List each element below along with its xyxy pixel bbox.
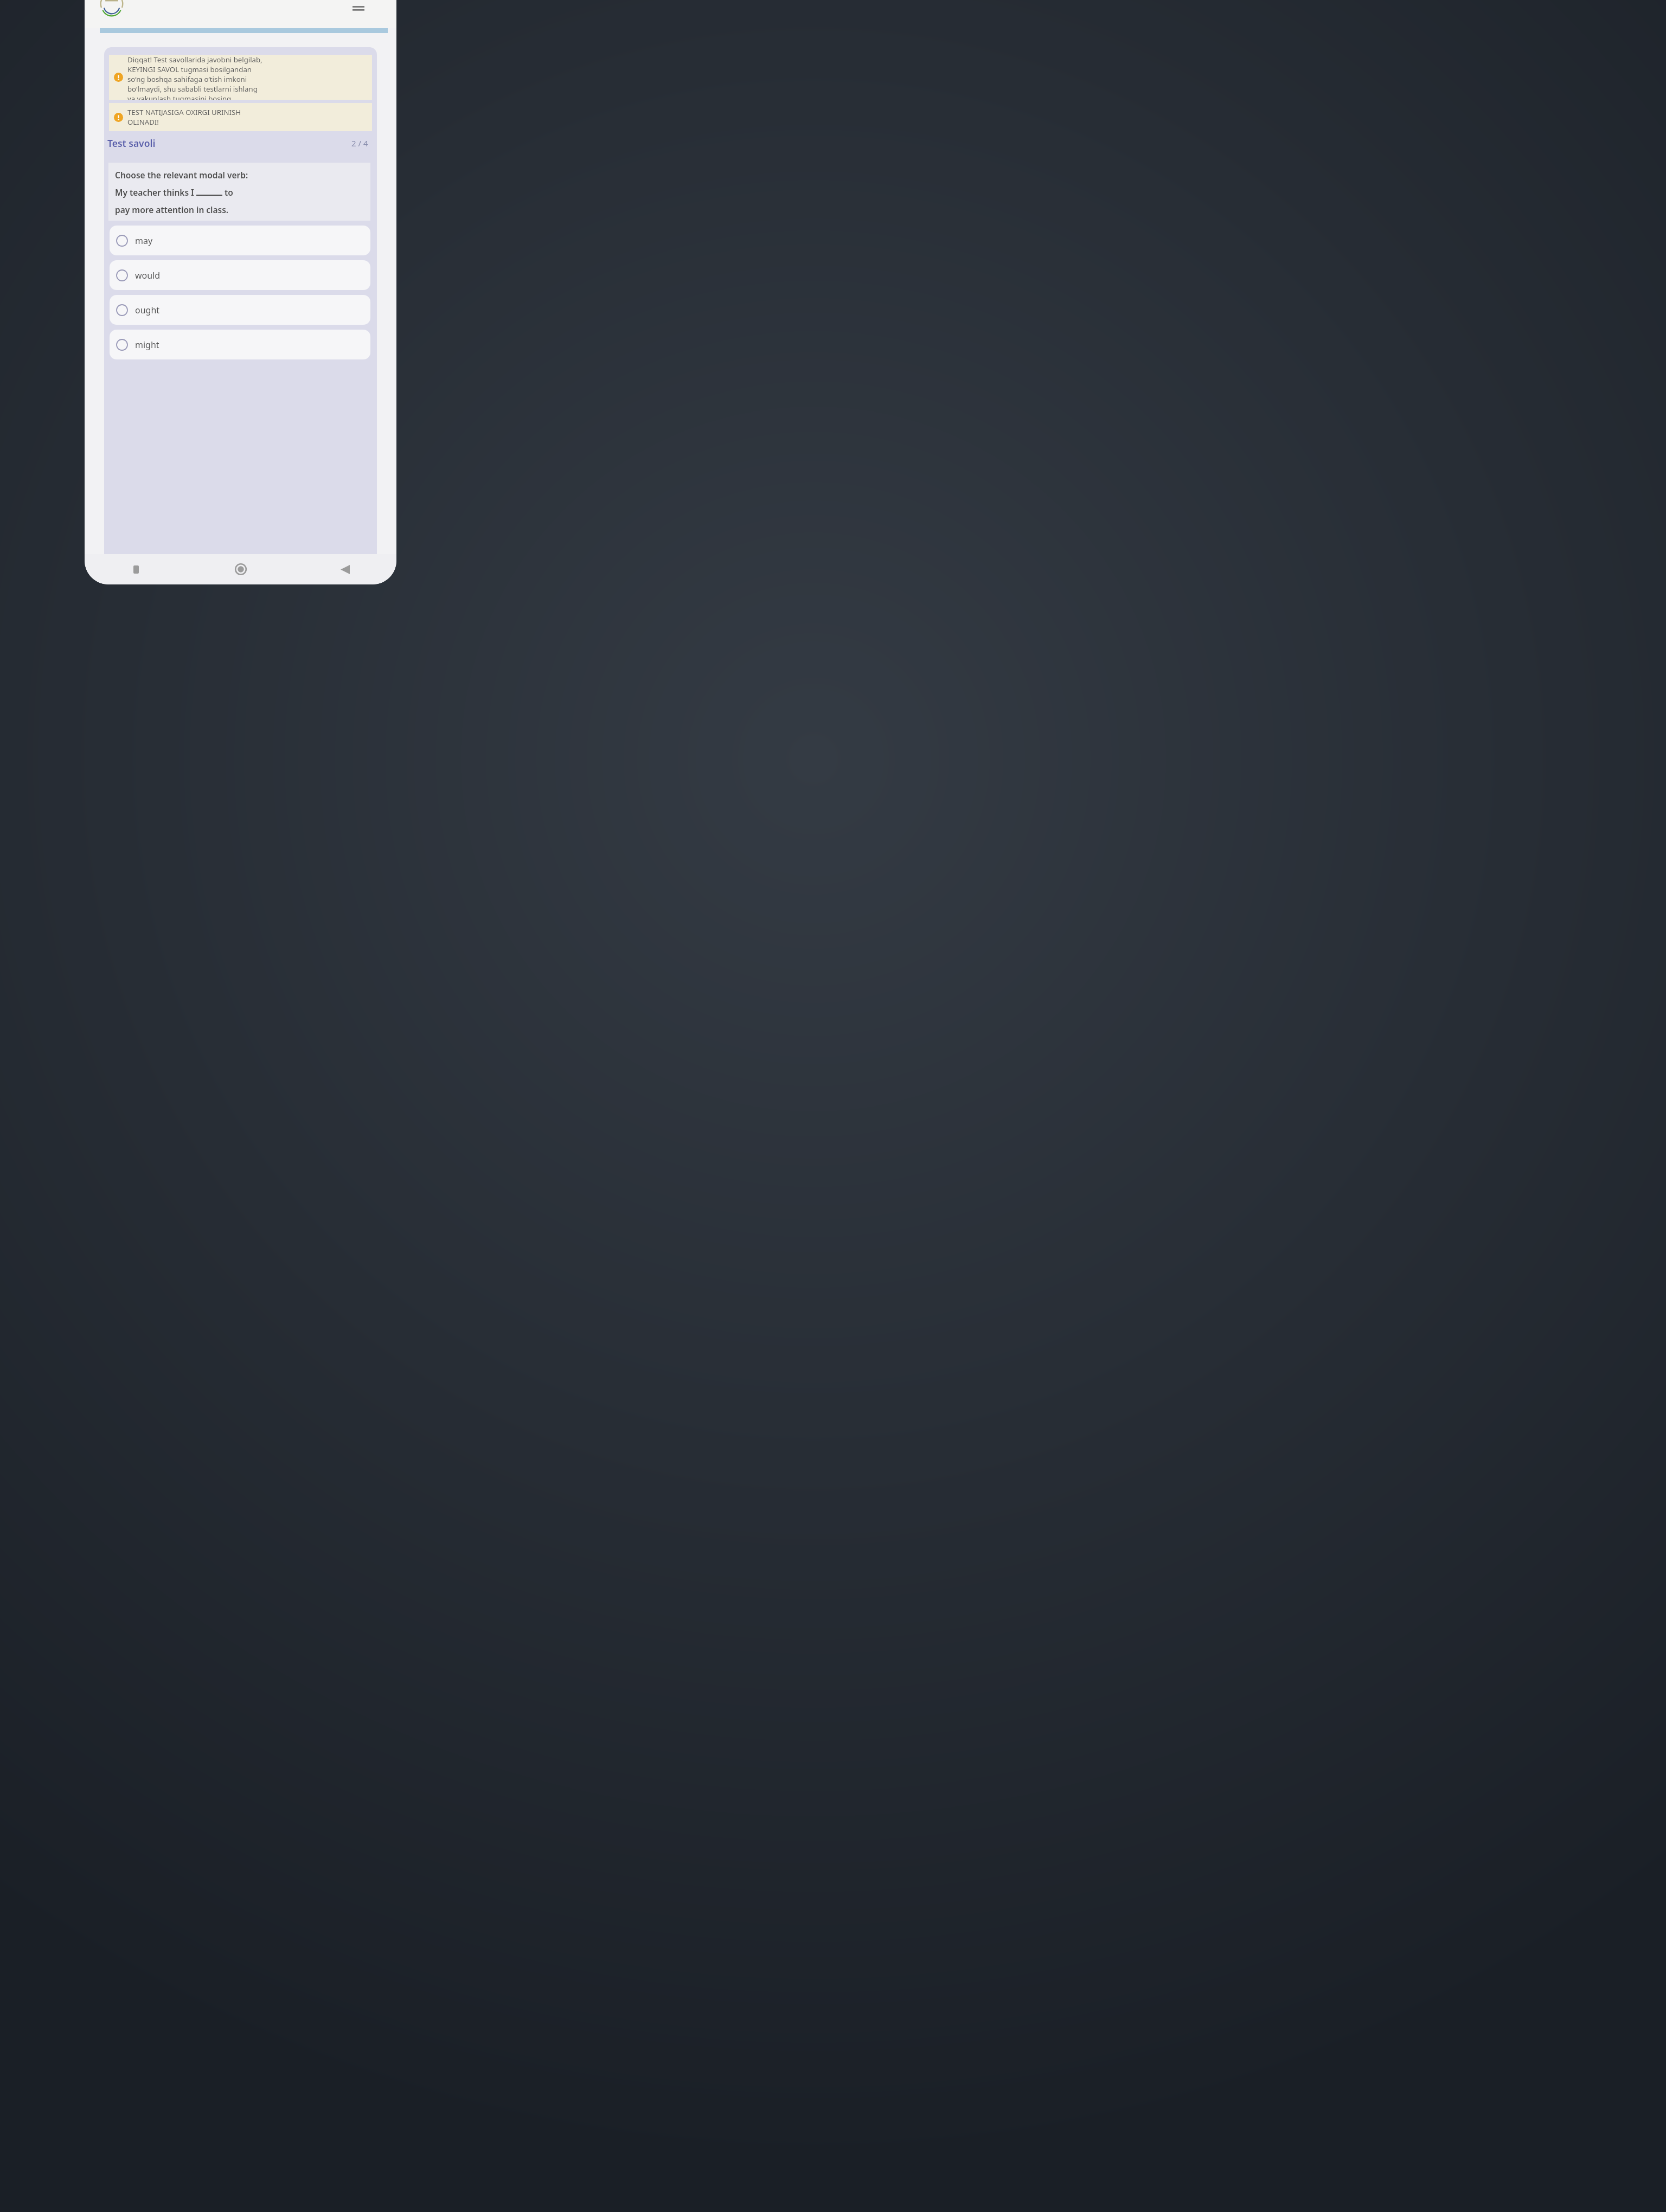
button[interactable]: Menu (347, 0, 370, 20)
button[interactable]: Home (230, 559, 251, 580)
button[interactable]: Recent apps (126, 559, 146, 580)
button[interactable]: would (110, 260, 370, 290)
staticText: to (222, 187, 233, 198)
staticText: Diqqat! Test savollarida javobni belgila… (127, 55, 262, 65)
button[interactable]: TEST NATIJASIGA OXIRGI URINISH (109, 103, 372, 131)
staticText: va yakunlash tugmasini bosing (127, 94, 232, 100)
staticText: would (135, 269, 161, 281)
staticText: ought (135, 304, 160, 316)
staticText: Choose the relevant modal verb: (115, 169, 248, 181)
staticText: KEYINGI SAVOL tugmasi bosilgandan (127, 65, 252, 74)
other: Logo (100, 0, 124, 16)
staticText: pay more attention in class. (115, 204, 229, 215)
staticText: Test savoli (107, 137, 156, 150)
button[interactable]: might (110, 330, 370, 359)
staticText: OLINADI! (127, 117, 159, 127)
button[interactable]: Back (335, 559, 355, 580)
button[interactable]: ought (110, 295, 370, 325)
staticText: 2 / 4 (351, 138, 368, 149)
staticText: My teacher thinks I (115, 187, 196, 198)
staticText: so‘ng boshqa sahifaga o‘tish imkoni (127, 74, 247, 84)
button[interactable]: Diqqat! Test savollarida javobni belgila… (109, 55, 372, 100)
staticText: might (135, 339, 159, 351)
staticText: TEST NATIJASIGA OXIRGI URINISH (127, 107, 241, 117)
staticText: may (135, 235, 153, 247)
button[interactable]: may (110, 226, 370, 255)
staticText: bo‘lmaydi, shu sababli testlarni ishlang (127, 84, 258, 94)
